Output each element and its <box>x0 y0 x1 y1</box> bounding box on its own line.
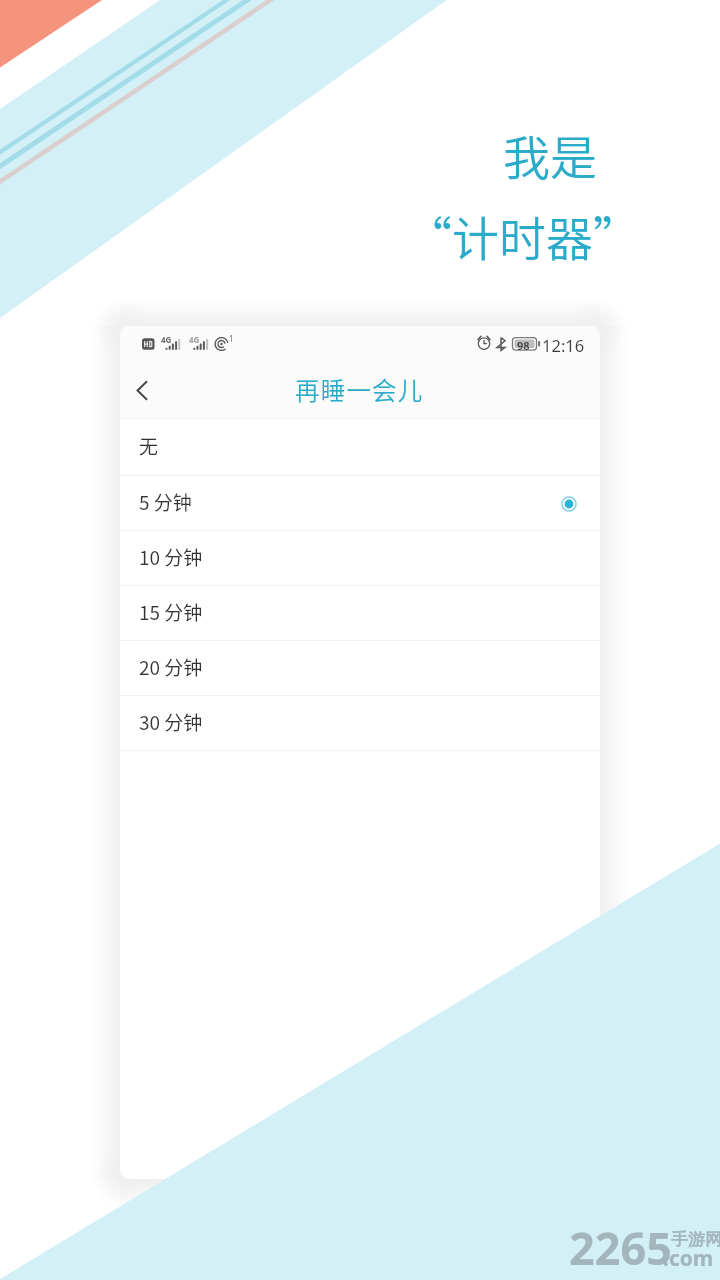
staticText: 20 分钟 <box>139 653 203 681</box>
staticText: 4G <box>189 334 200 345</box>
staticText: 4G <box>161 334 172 345</box>
staticText: 30 分钟 <box>139 708 203 736</box>
staticText: 5 分钟 <box>139 488 192 516</box>
button[interactable]: 20 分钟 <box>120 641 600 696</box>
staticText: 15 分钟 <box>139 598 203 626</box>
staticText: .com <box>663 1244 714 1273</box>
button[interactable]: 10 分钟 <box>120 531 600 586</box>
button[interactable]: 5 分钟 <box>120 476 600 531</box>
button[interactable]: 15 分钟 <box>120 586 600 641</box>
staticText: 我是 <box>503 120 597 188</box>
staticText: 98 <box>517 338 530 353</box>
staticText: 12:16 <box>542 334 585 356</box>
staticText: 10 分钟 <box>139 543 203 571</box>
staticText: 手游网 <box>671 1229 720 1250</box>
button[interactable]: Back <box>120 367 164 411</box>
staticText: 无 <box>139 432 159 460</box>
button[interactable]: 30 分钟 <box>120 696 600 751</box>
staticText: 1 <box>229 333 234 344</box>
button[interactable]: 无 <box>120 419 600 476</box>
staticText: 2265 <box>569 1217 672 1278</box>
staticText: “计时器” <box>405 201 640 269</box>
staticText: 再睡一会儿 <box>295 372 424 407</box>
